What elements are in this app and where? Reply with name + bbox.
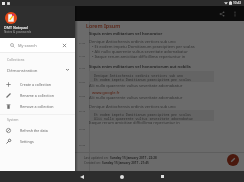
button[interactable]: Démonstration: [7, 64, 70, 75]
staticText: Démonstration: [7, 67, 38, 73]
staticText: Settings: [20, 139, 34, 144]
staticText: 22:09: [79, 94, 86, 97]
staticText: Siquis enim militarium vel honoratorum a…: [89, 64, 191, 69]
staticText: Sunday 15 January 2017 - 21:45: [102, 161, 149, 165]
staticText: • Et eodem impetu Domitianum praecipitem…: [92, 44, 195, 49]
staticText: 22:28: [79, 143, 86, 146]
button[interactable]: Remove a collection: [0, 101, 75, 112]
staticText: Collections: [7, 57, 25, 62]
staticText: Remove a collection: [20, 104, 54, 109]
staticText: Alii nullo quaerente vultus severitate a…: [89, 95, 183, 100]
staticText: Denique Antiochensis ordinis vertices su…: [89, 39, 176, 44]
staticText: Et eodem impetu Domitianum praecipitem p…: [94, 77, 191, 81]
staticText: DMT Notepad: [4, 25, 28, 30]
staticText: Lorem Ipsum: [86, 22, 121, 29]
staticText: 22:26: [79, 127, 86, 130]
button[interactable]: Settings: [0, 136, 75, 147]
button[interactable]: Recents: [142, 171, 182, 182]
staticText: Last updated on:: [84, 156, 110, 160]
staticText: Refresh the data: [20, 128, 48, 133]
button[interactable]: Edit note: [227, 154, 239, 166]
button[interactable]: Share: [215, 7, 228, 20]
button[interactable]: Create a collection: [0, 79, 75, 90]
staticText: 21:50: [79, 54, 86, 57]
staticText: Notes & passwords: [4, 30, 32, 34]
button[interactable]: More options: [228, 7, 241, 20]
staticText: 22:18: [79, 109, 86, 112]
staticText: Create a collection: [20, 82, 52, 87]
button[interactable]: Rename a collection: [0, 90, 75, 101]
staticText: Sunday 15 January 2017 - 22:28: [110, 156, 157, 160]
staticText: Denique Antiochensis ordinis vertices su…: [94, 73, 184, 77]
staticText: 22:04: [79, 80, 86, 83]
button[interactable]: Back: [62, 171, 102, 182]
staticText: Alii nullo quaerente vultus severitate a…: [89, 83, 183, 88]
staticText: Created on:: [84, 161, 102, 165]
staticText: 21:52: [79, 66, 86, 69]
staticText: Denique Antiochensis ordinis vertices su…: [89, 104, 176, 109]
staticText: Rename a collection: [20, 93, 54, 98]
staticText: 21:50: [79, 41, 86, 44]
button[interactable]: Home: [102, 171, 142, 182]
staticText: Siquis enim militarium vel honorator: [89, 31, 163, 36]
button[interactable]: Refresh the data: [0, 125, 75, 136]
staticText: Alii nullo quaerente vultus severitate a…: [94, 116, 193, 120]
staticText: www.google.fr: [92, 90, 120, 95]
staticText: My search: [18, 43, 37, 48]
staticText: Et eodem impetu Domitianum praecipitem p…: [94, 112, 191, 116]
staticText: System: [7, 117, 19, 122]
button[interactable]: My search: [0, 38, 75, 52]
staticText: 10:43: [233, 1, 242, 5]
staticText: • Itaque rerum amicitiae difficillima re…: [92, 54, 186, 59]
staticText: • Alii nullo quaerente vultus severitate…: [92, 49, 188, 54]
staticText: Itaque rerum amicitiae difficillima repe…: [89, 120, 180, 125]
